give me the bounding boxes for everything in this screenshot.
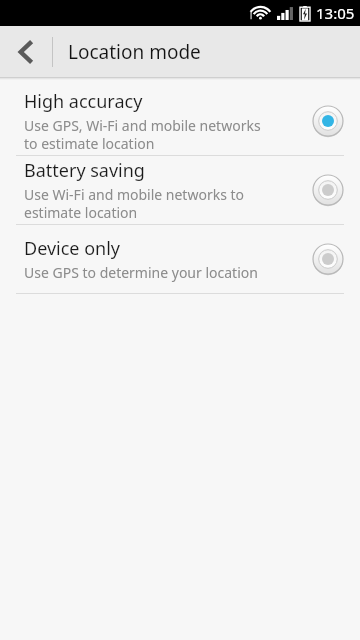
button[interactable]: Battery saving — [0, 156, 360, 225]
staticText: Use GPS, Wi-Fi and mobile networks to es… — [24, 116, 261, 153]
staticText: High accuracy — [24, 89, 143, 114]
button[interactable]: Back — [0, 26, 52, 78]
staticText: 13:05 — [316, 3, 355, 23]
button[interactable]: High accuracy — [0, 87, 360, 156]
staticText: Device only — [24, 236, 121, 261]
button[interactable]: Device only — [0, 225, 360, 294]
staticText: Location mode — [68, 39, 201, 65]
staticText: Use Wi-Fi and mobile networks to estimat… — [24, 185, 245, 222]
staticText: Use GPS to determine your location — [24, 263, 258, 282]
staticText: Battery saving — [24, 158, 145, 183]
